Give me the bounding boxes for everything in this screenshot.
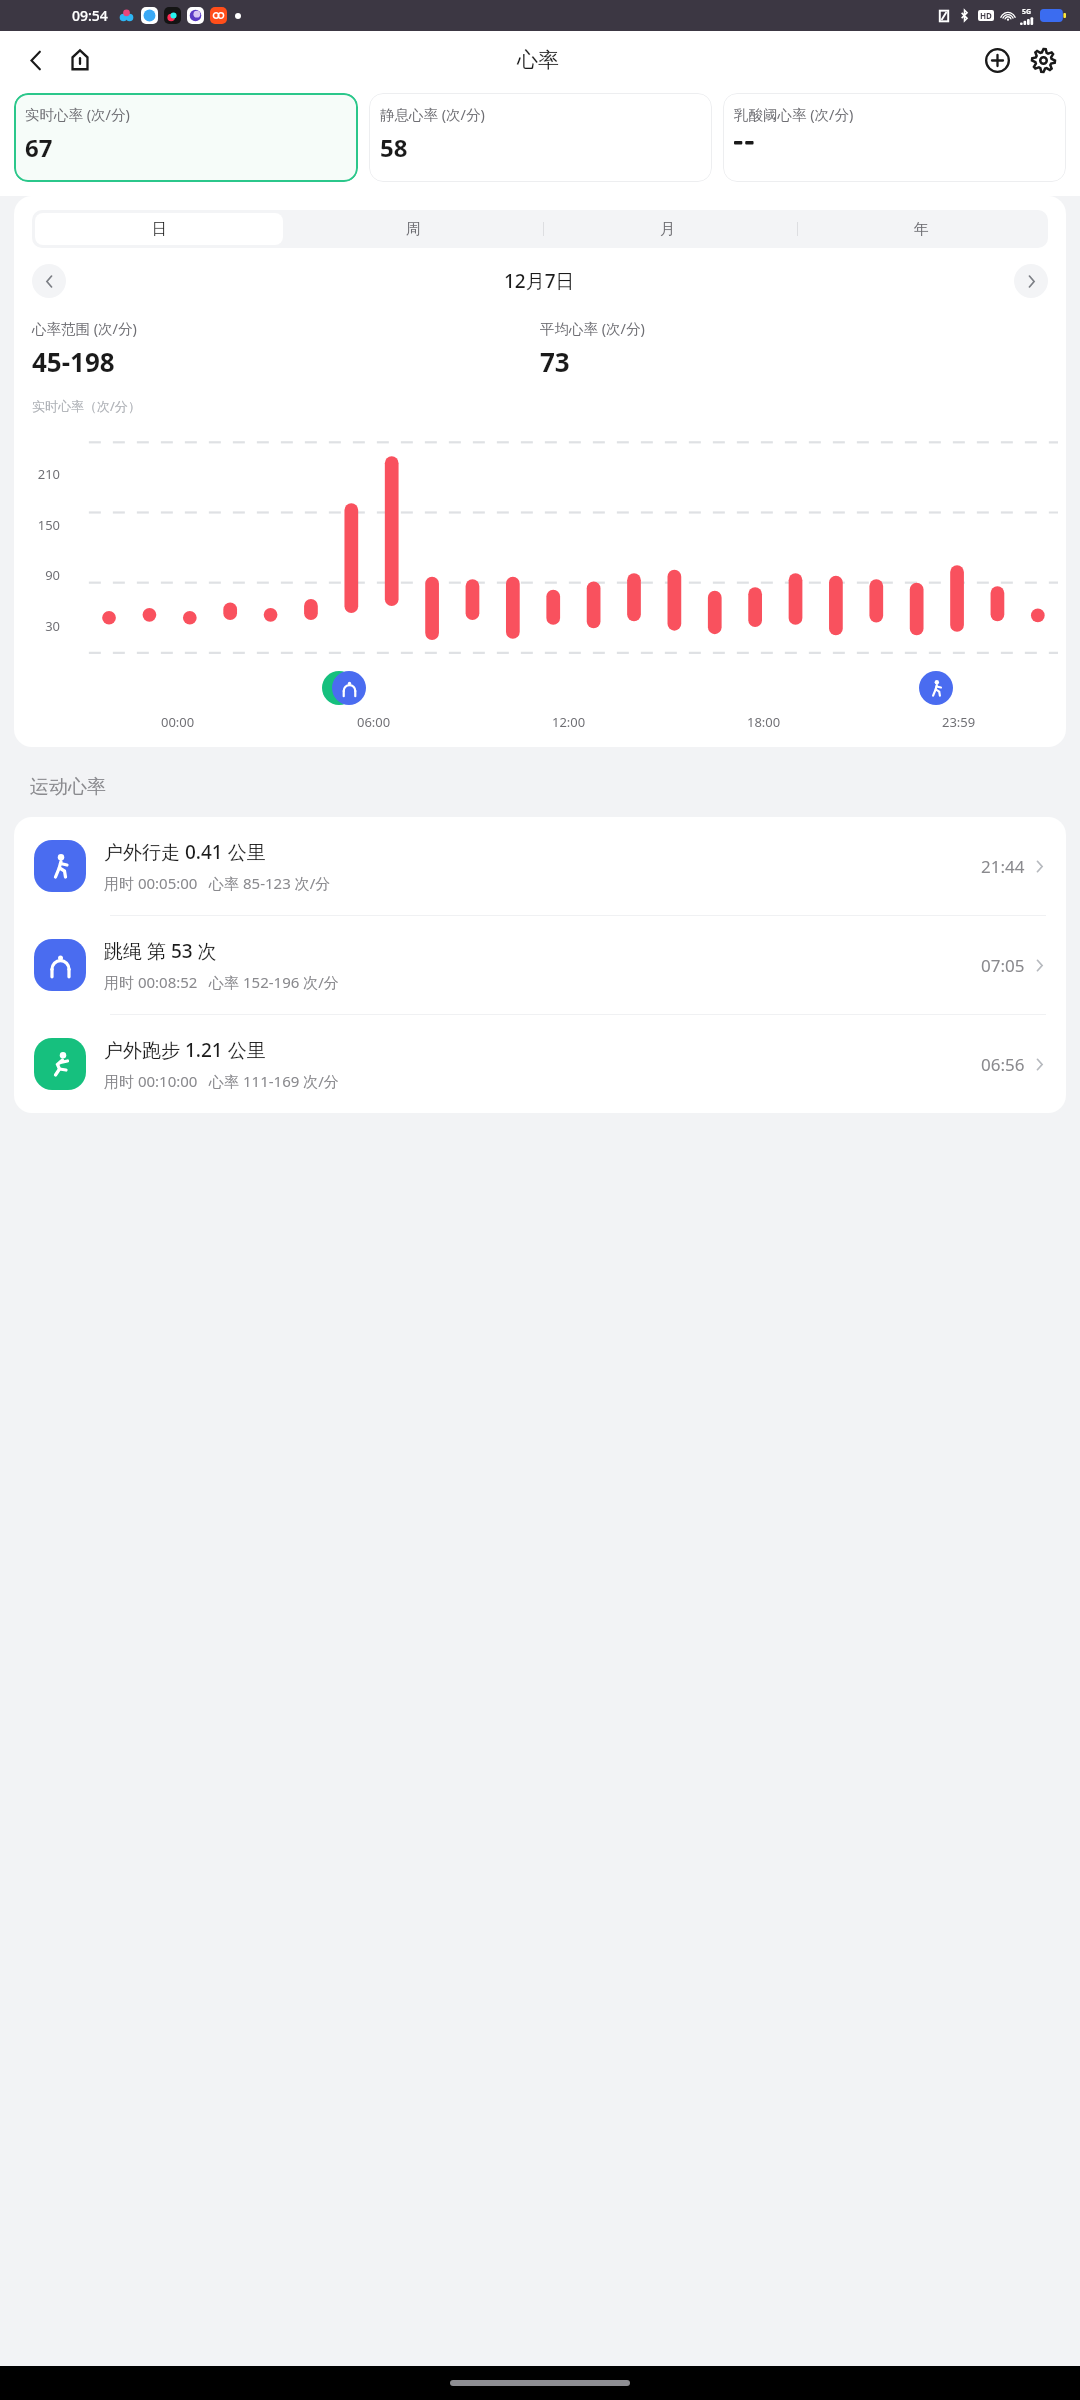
staticText: 00:00 bbox=[161, 713, 195, 731]
staticText: 户外行走 0.41 公里 bbox=[104, 839, 266, 865]
button[interactable]: 年 bbox=[797, 213, 1045, 245]
staticText: 实时心率（次/分） bbox=[32, 397, 141, 415]
staticText: 5G bbox=[1022, 7, 1032, 17]
staticText: 210 bbox=[18, 465, 60, 483]
staticText: 用时 00:08:52 心率 152-196 次/分 bbox=[104, 972, 339, 992]
button[interactable]: Previous day bbox=[32, 264, 66, 298]
button[interactable]: 户外跑步 1.21 公里 bbox=[14, 1015, 1066, 1113]
button[interactable]: Back bbox=[14, 38, 58, 82]
staticText: 用时 00:05:00 心率 85-123 次/分 bbox=[104, 873, 331, 893]
staticText: 运动心率 bbox=[30, 775, 106, 799]
staticText: 09:54 bbox=[72, 6, 108, 25]
staticText: 21:44 bbox=[981, 855, 1025, 878]
button[interactable]: Home bbox=[58, 38, 102, 82]
button[interactable]: 日 bbox=[35, 213, 283, 245]
staticText: 实时心率 (次/分) bbox=[25, 104, 130, 124]
staticText: 平均心率 (次/分) bbox=[540, 318, 645, 338]
button[interactable]: 实时心率 (次/分) bbox=[14, 93, 358, 182]
staticText: 150 bbox=[18, 516, 60, 534]
staticText: 06:00 bbox=[357, 713, 391, 731]
staticText: 30 bbox=[18, 617, 60, 635]
staticText: 日 bbox=[152, 220, 167, 239]
staticText: 心率 bbox=[517, 47, 559, 73]
button[interactable]: Jump rope session bbox=[322, 671, 366, 705]
staticText: 90 bbox=[18, 566, 60, 584]
button[interactable]: Settings bbox=[1020, 37, 1066, 83]
button[interactable]: 跳绳 第 53 次 bbox=[14, 916, 1066, 1014]
staticText: 年 bbox=[914, 220, 929, 239]
button[interactable]: 静息心率 (次/分) bbox=[369, 93, 712, 182]
staticText: 周 bbox=[406, 220, 421, 239]
staticText: 户外跑步 1.21 公里 bbox=[104, 1037, 266, 1063]
staticText: 06:56 bbox=[981, 1053, 1025, 1076]
button[interactable]: Walking session bbox=[919, 671, 953, 705]
staticText: HD bbox=[980, 10, 992, 21]
staticText: 静息心率 (次/分) bbox=[380, 104, 485, 124]
staticText: 月 bbox=[660, 220, 675, 239]
staticText: 45-198 bbox=[32, 344, 115, 379]
button[interactable]: Next day bbox=[1014, 264, 1048, 298]
staticText: 12月7日 bbox=[504, 268, 575, 294]
staticText: 12:00 bbox=[552, 713, 586, 731]
staticText: 心率范围 (次/分) bbox=[32, 318, 137, 338]
button[interactable]: Add bbox=[974, 37, 1020, 83]
button[interactable]: 乳酸阈心率 (次/分) bbox=[723, 93, 1066, 182]
staticText: 67 bbox=[25, 131, 53, 164]
staticText: 73 bbox=[540, 344, 570, 379]
staticText: 用时 00:10:00 心率 111-169 次/分 bbox=[104, 1071, 339, 1091]
staticText: 跳绳 第 53 次 bbox=[104, 938, 217, 964]
staticText: 58 bbox=[380, 131, 408, 164]
staticText: 18:00 bbox=[747, 713, 781, 731]
staticText: 07:05 bbox=[981, 954, 1025, 977]
staticText: 23:59 bbox=[942, 713, 976, 731]
staticText: 乳酸阈心率 (次/分) bbox=[734, 104, 854, 124]
button[interactable]: 周 bbox=[289, 213, 537, 245]
button[interactable]: 月 bbox=[543, 213, 791, 245]
button[interactable]: 户外行走 0.41 公里 bbox=[14, 817, 1066, 915]
